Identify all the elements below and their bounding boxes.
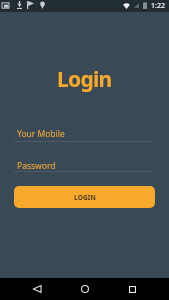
staticText: LOGIN xyxy=(74,193,96,202)
staticText: 1:22 xyxy=(151,1,165,11)
button[interactable]: Your Mobile xyxy=(14,125,152,142)
button[interactable]: Password xyxy=(14,157,152,172)
staticText: Login xyxy=(57,65,112,94)
button[interactable]: LOGIN xyxy=(14,186,155,208)
staticText: Your Mobile xyxy=(17,128,65,140)
button[interactable]: Home xyxy=(74,278,96,300)
button[interactable]: Recents xyxy=(121,278,143,300)
staticText: Password xyxy=(17,160,56,172)
button[interactable]: Back xyxy=(26,278,48,300)
